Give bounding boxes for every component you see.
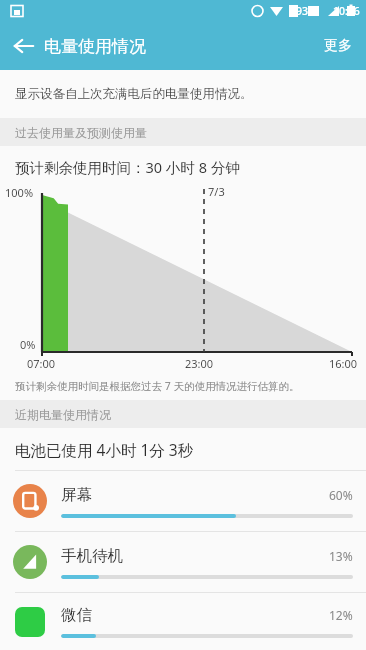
- staticText: 60%: [329, 487, 353, 503]
- button[interactable]: 手机待机: [0, 532, 366, 592]
- staticText: 手机待机: [61, 546, 329, 566]
- staticText: 电量使用情况: [44, 36, 146, 57]
- staticText: 12%: [329, 607, 353, 623]
- staticText: 近期电量使用情况: [15, 407, 111, 422]
- staticText: 过去使用量及预测使用量: [15, 125, 147, 140]
- staticText: 23:00: [185, 356, 214, 371]
- staticText: 93%: [296, 4, 317, 18]
- staticText: 0%: [20, 337, 36, 352]
- button[interactable]: 屏幕: [0, 471, 366, 531]
- staticText: 更多: [324, 37, 352, 55]
- staticText: 微信: [61, 605, 329, 625]
- staticText: 预计剩余使用时间：30 小时 8 分钟: [15, 157, 240, 177]
- staticText: 屏幕: [61, 485, 329, 505]
- staticText: 显示设备自上次充满电后的电量使用情况。: [15, 86, 253, 102]
- staticText: 预计剩余使用时间是根据您过去 7 天的使用情况进行估算的。: [15, 379, 300, 393]
- staticText: 7/3: [208, 184, 225, 199]
- staticText: 10:16: [333, 4, 360, 18]
- button[interactable]: 更多: [310, 22, 366, 70]
- staticText: 16:00: [329, 356, 358, 371]
- staticText: 电池已使用 4小时 1分 3秒: [15, 439, 194, 460]
- staticText: 13%: [329, 548, 353, 564]
- staticText: 100%: [5, 185, 34, 200]
- button[interactable]: 微信: [0, 593, 366, 650]
- staticText: 07:00: [27, 356, 56, 371]
- button[interactable]: Back: [0, 22, 48, 70]
